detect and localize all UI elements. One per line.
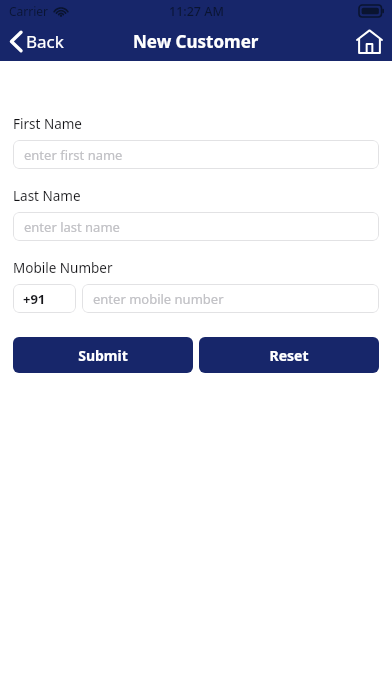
staticText: Mobile Number <box>13 259 113 277</box>
staticText: First Name <box>13 115 82 133</box>
staticText: Back <box>26 30 64 53</box>
staticText: enter mobile number <box>93 290 224 308</box>
staticText: Reset <box>269 346 309 365</box>
staticText: 11:27 AM <box>169 3 224 20</box>
button[interactable]: Back <box>0 26 72 57</box>
button[interactable]: Home <box>356 29 383 54</box>
button[interactable]: enter last name <box>13 212 379 241</box>
button[interactable]: enter first name <box>13 140 379 169</box>
staticText: enter first name <box>24 146 123 164</box>
staticText: Submit <box>78 346 128 365</box>
staticText: New Customer <box>133 30 259 53</box>
staticText: +91 <box>23 290 46 308</box>
staticText: enter last name <box>24 218 120 236</box>
button[interactable]: enter mobile number <box>82 284 379 313</box>
staticText: Last Name <box>13 187 81 205</box>
button[interactable]: Reset <box>199 337 379 373</box>
staticText: Carrier <box>9 3 49 19</box>
button[interactable]: Submit <box>13 337 193 373</box>
button[interactable]: +91 <box>13 284 76 313</box>
